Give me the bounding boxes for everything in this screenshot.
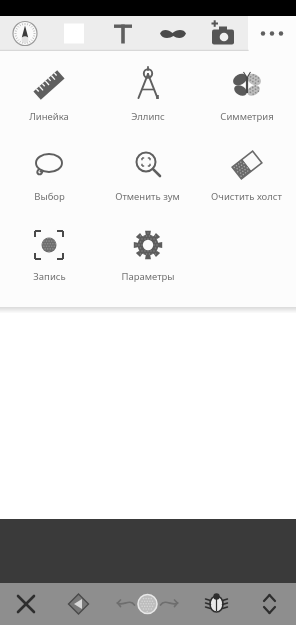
staticText: Очистить холст bbox=[211, 190, 282, 203]
staticText: Запись bbox=[33, 270, 66, 283]
button[interactable]: Параметры bbox=[98, 217, 197, 297]
button[interactable]: Симметрия bbox=[197, 57, 296, 137]
button[interactable]: Линейка bbox=[0, 57, 98, 137]
button[interactable]: Эллипс bbox=[98, 57, 197, 137]
button[interactable]: Color bbox=[50, 16, 98, 51]
button[interactable]: Отменить зум bbox=[98, 137, 197, 217]
button[interactable]: Brush shape bbox=[52, 583, 105, 625]
button[interactable]: More options bbox=[248, 16, 296, 51]
button[interactable]: Выбор bbox=[0, 137, 98, 217]
staticText: Симметрия bbox=[220, 110, 274, 123]
button[interactable]: Text bbox=[98, 16, 148, 51]
staticText: Отменить зум bbox=[115, 190, 180, 203]
button[interactable]: Close bbox=[0, 583, 52, 625]
button[interactable]: Layers bbox=[190, 583, 243, 625]
staticText: Эллипс bbox=[131, 110, 165, 123]
staticText: Линейка bbox=[29, 110, 69, 123]
button[interactable]: Expand bbox=[243, 583, 296, 625]
button[interactable]: Smudge bbox=[148, 16, 198, 51]
staticText: Параметры bbox=[121, 270, 175, 283]
staticText: Выбор bbox=[34, 190, 65, 203]
button[interactable]: Очистить холст bbox=[197, 137, 296, 217]
button[interactable]: Add photo bbox=[198, 16, 248, 51]
button[interactable]: Brush bbox=[0, 16, 50, 51]
button[interactable]: Undo redo bbox=[105, 583, 190, 625]
button[interactable]: Запись bbox=[0, 217, 98, 297]
